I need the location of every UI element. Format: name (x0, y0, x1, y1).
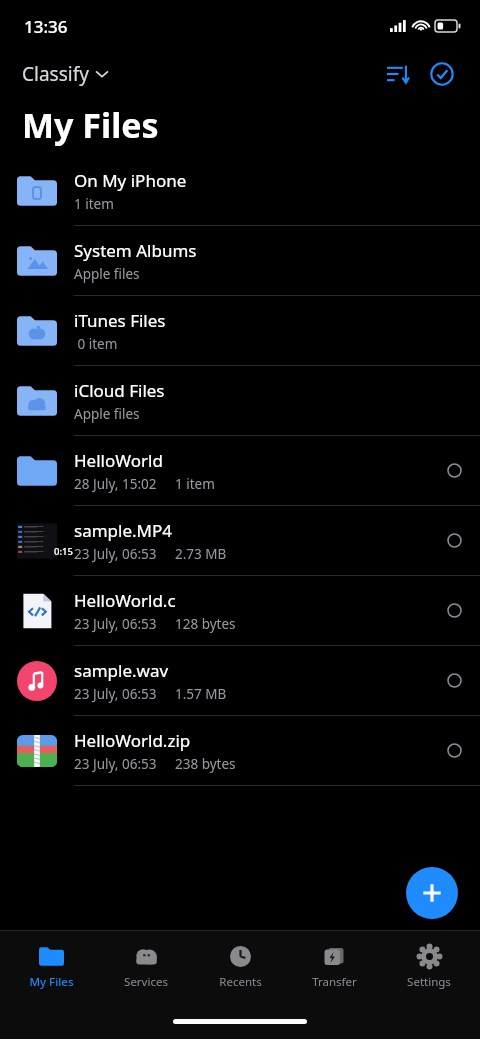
staticText: 2.73 MB (175, 545, 227, 563)
staticText: Apple files (74, 265, 140, 283)
staticText: Settings (407, 974, 451, 990)
button[interactable]: Sort (378, 54, 418, 94)
staticText: System Albums (74, 239, 197, 262)
button[interactable]: iCloud Files (0, 366, 480, 435)
button[interactable]: HelloWorld.zip (0, 716, 480, 785)
staticText: sample.MP4 (74, 519, 172, 542)
button[interactable]: Add (406, 867, 458, 919)
staticText: 238 bytes (175, 755, 236, 773)
staticText: 23 July, 06:53 (74, 615, 157, 633)
staticText: 1.57 MB (175, 685, 227, 703)
button[interactable]: HelloWorld (0, 436, 480, 505)
button[interactable]: Settings (386, 944, 472, 990)
button[interactable]: HelloWorld.c (0, 576, 480, 645)
button[interactable]: System Albums (0, 226, 480, 295)
staticText: 28 July, 15:02 (74, 475, 157, 493)
button[interactable]: sample.wav (0, 646, 480, 715)
staticText: My Files (22, 102, 159, 148)
button[interactable]: 0:15 (0, 506, 480, 575)
staticText: HelloWorld.zip (74, 729, 191, 752)
staticText: sample.wav (74, 659, 169, 682)
staticText: iCloud Files (74, 379, 165, 402)
staticText: Transfer (312, 974, 357, 990)
staticText: My Files (29, 974, 74, 990)
button[interactable]: iTunes Files (0, 296, 480, 365)
staticText: 1 item (175, 475, 215, 493)
staticText: 23 July, 06:53 (74, 545, 157, 563)
button[interactable]: Classify (22, 61, 108, 87)
staticText: 1 item (74, 195, 114, 213)
staticText: On My iPhone (74, 169, 187, 192)
staticText: 128 bytes (175, 615, 236, 633)
staticText: Recents (219, 974, 262, 990)
button[interactable]: Services (103, 944, 189, 990)
staticText: 0:15 (54, 545, 73, 558)
button[interactable]: My Files (8, 944, 94, 990)
staticText: Apple files (74, 405, 140, 423)
staticText: 23 July, 06:53 (74, 755, 157, 773)
staticText: HelloWorld.c (74, 589, 176, 612)
staticText: 23 July, 06:53 (74, 685, 157, 703)
button[interactable]: Transfer (291, 944, 377, 990)
staticText: 13:36 (24, 15, 68, 38)
staticText: Classify (22, 61, 89, 87)
staticText: Services (124, 974, 168, 990)
button[interactable]: Select (422, 54, 462, 94)
staticText: 0 item (74, 335, 118, 353)
staticText: HelloWorld (74, 449, 163, 472)
staticText: iTunes Files (74, 309, 166, 332)
button[interactable]: On My iPhone (0, 156, 480, 225)
button[interactable]: Recents (197, 944, 283, 990)
